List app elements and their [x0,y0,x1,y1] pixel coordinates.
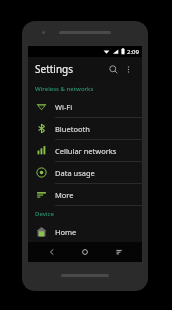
button[interactable]: Search [105,61,121,77]
button[interactable]: Home [28,221,142,242]
staticText: Wireless & networks [35,85,94,93]
button[interactable]: Back [42,242,62,262]
button[interactable]: More options [121,62,135,76]
button[interactable]: Bluetooth [28,118,142,139]
staticText: Settings [35,62,105,76]
staticText: 2:09 [127,48,139,56]
button[interactable]: Wi-Fi [28,96,142,117]
staticText: Cellular networks [55,146,117,156]
button[interactable]: Cellular networks [28,140,142,161]
staticText: Home [55,227,77,237]
staticText: Wi-Fi [55,102,73,112]
button[interactable]: Data usage [28,162,142,183]
staticText: Device [35,210,54,218]
staticText: More [55,190,74,200]
button[interactable]: Home [75,242,95,262]
staticText: Bluetooth [55,124,90,134]
staticText: Data usage [55,168,95,178]
button[interactable]: Recent apps [109,242,129,262]
button[interactable]: More [28,184,142,205]
